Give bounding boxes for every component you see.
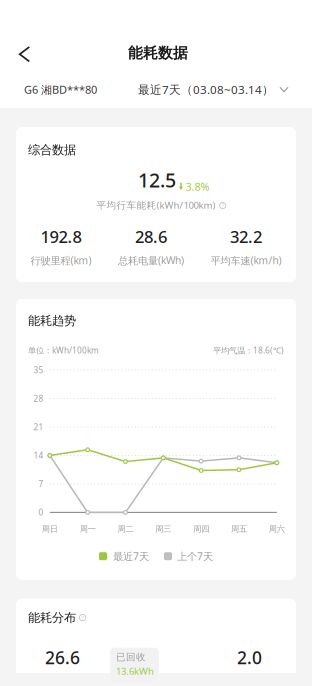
staticText: 2.0 [237, 646, 262, 669]
staticText: 周一 [80, 524, 96, 534]
staticText: 周六 [269, 524, 285, 534]
staticText: 35 [33, 364, 43, 376]
staticText: 7 [38, 478, 43, 489]
staticText: 能耗分布 [28, 610, 76, 625]
staticText: ? [222, 202, 224, 209]
staticText: 周三 [155, 524, 171, 534]
staticText: 综合数据 [28, 142, 76, 158]
staticText: 21 [33, 421, 43, 433]
staticText: 13.6kWh [116, 665, 154, 678]
staticText: 能耗数据 [128, 44, 188, 62]
staticText: 单位：kWh/100km [28, 345, 99, 356]
staticText: 最近7天 [113, 549, 149, 563]
staticText: 26.6 [45, 646, 80, 669]
button[interactable]: 最近7天（03.08~03.14） [138, 82, 288, 97]
staticText: 32.2 [230, 225, 262, 248]
staticText: 12.5 [138, 167, 176, 193]
staticText: 周二 [117, 524, 133, 534]
staticText: 28 [33, 393, 43, 404]
staticText: 周五 [231, 524, 247, 534]
staticText: 0 [38, 507, 43, 518]
staticText: 能耗趋势 [28, 313, 76, 328]
staticText: 14 [33, 450, 43, 461]
button[interactable]: Back [0, 33, 49, 71]
staticText: ? [82, 614, 84, 621]
staticText: 平均车速(km/h) [210, 253, 281, 267]
staticText: 行驶里程(km) [30, 253, 91, 267]
staticText: G6 湘BD***80 [24, 82, 97, 97]
staticText: 平均行车能耗(kWh/100km) [96, 198, 215, 212]
staticText: 总耗电量(kWh) [118, 253, 184, 267]
staticText: 周四 [193, 524, 209, 534]
staticText: 已回收 [116, 651, 146, 663]
staticText: 周日 [42, 524, 58, 534]
staticText: 上个7天 [177, 549, 213, 563]
staticText: 28.6 [135, 225, 167, 248]
staticText: 3.8% [185, 179, 209, 194]
staticText: 最近7天（03.08~03.14） [138, 82, 274, 97]
staticText: 192.8 [40, 225, 81, 248]
staticText: 平均气温：18.6(℃) [213, 345, 284, 356]
